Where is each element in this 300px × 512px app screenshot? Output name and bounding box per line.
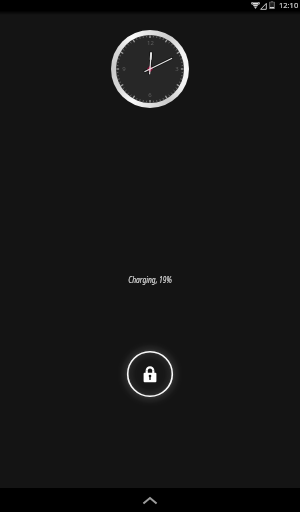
staticText: Charging, 19% bbox=[45, 273, 255, 286]
staticText: 12 bbox=[147, 39, 154, 47]
staticText: 6 bbox=[148, 91, 152, 99]
staticText: 3 bbox=[175, 65, 179, 73]
button[interactable]: Unlock bbox=[116, 340, 184, 408]
staticText: 12:10 bbox=[279, 0, 299, 10]
button[interactable]: Expand navigation bbox=[130, 488, 170, 512]
staticText: 9 bbox=[122, 65, 126, 73]
